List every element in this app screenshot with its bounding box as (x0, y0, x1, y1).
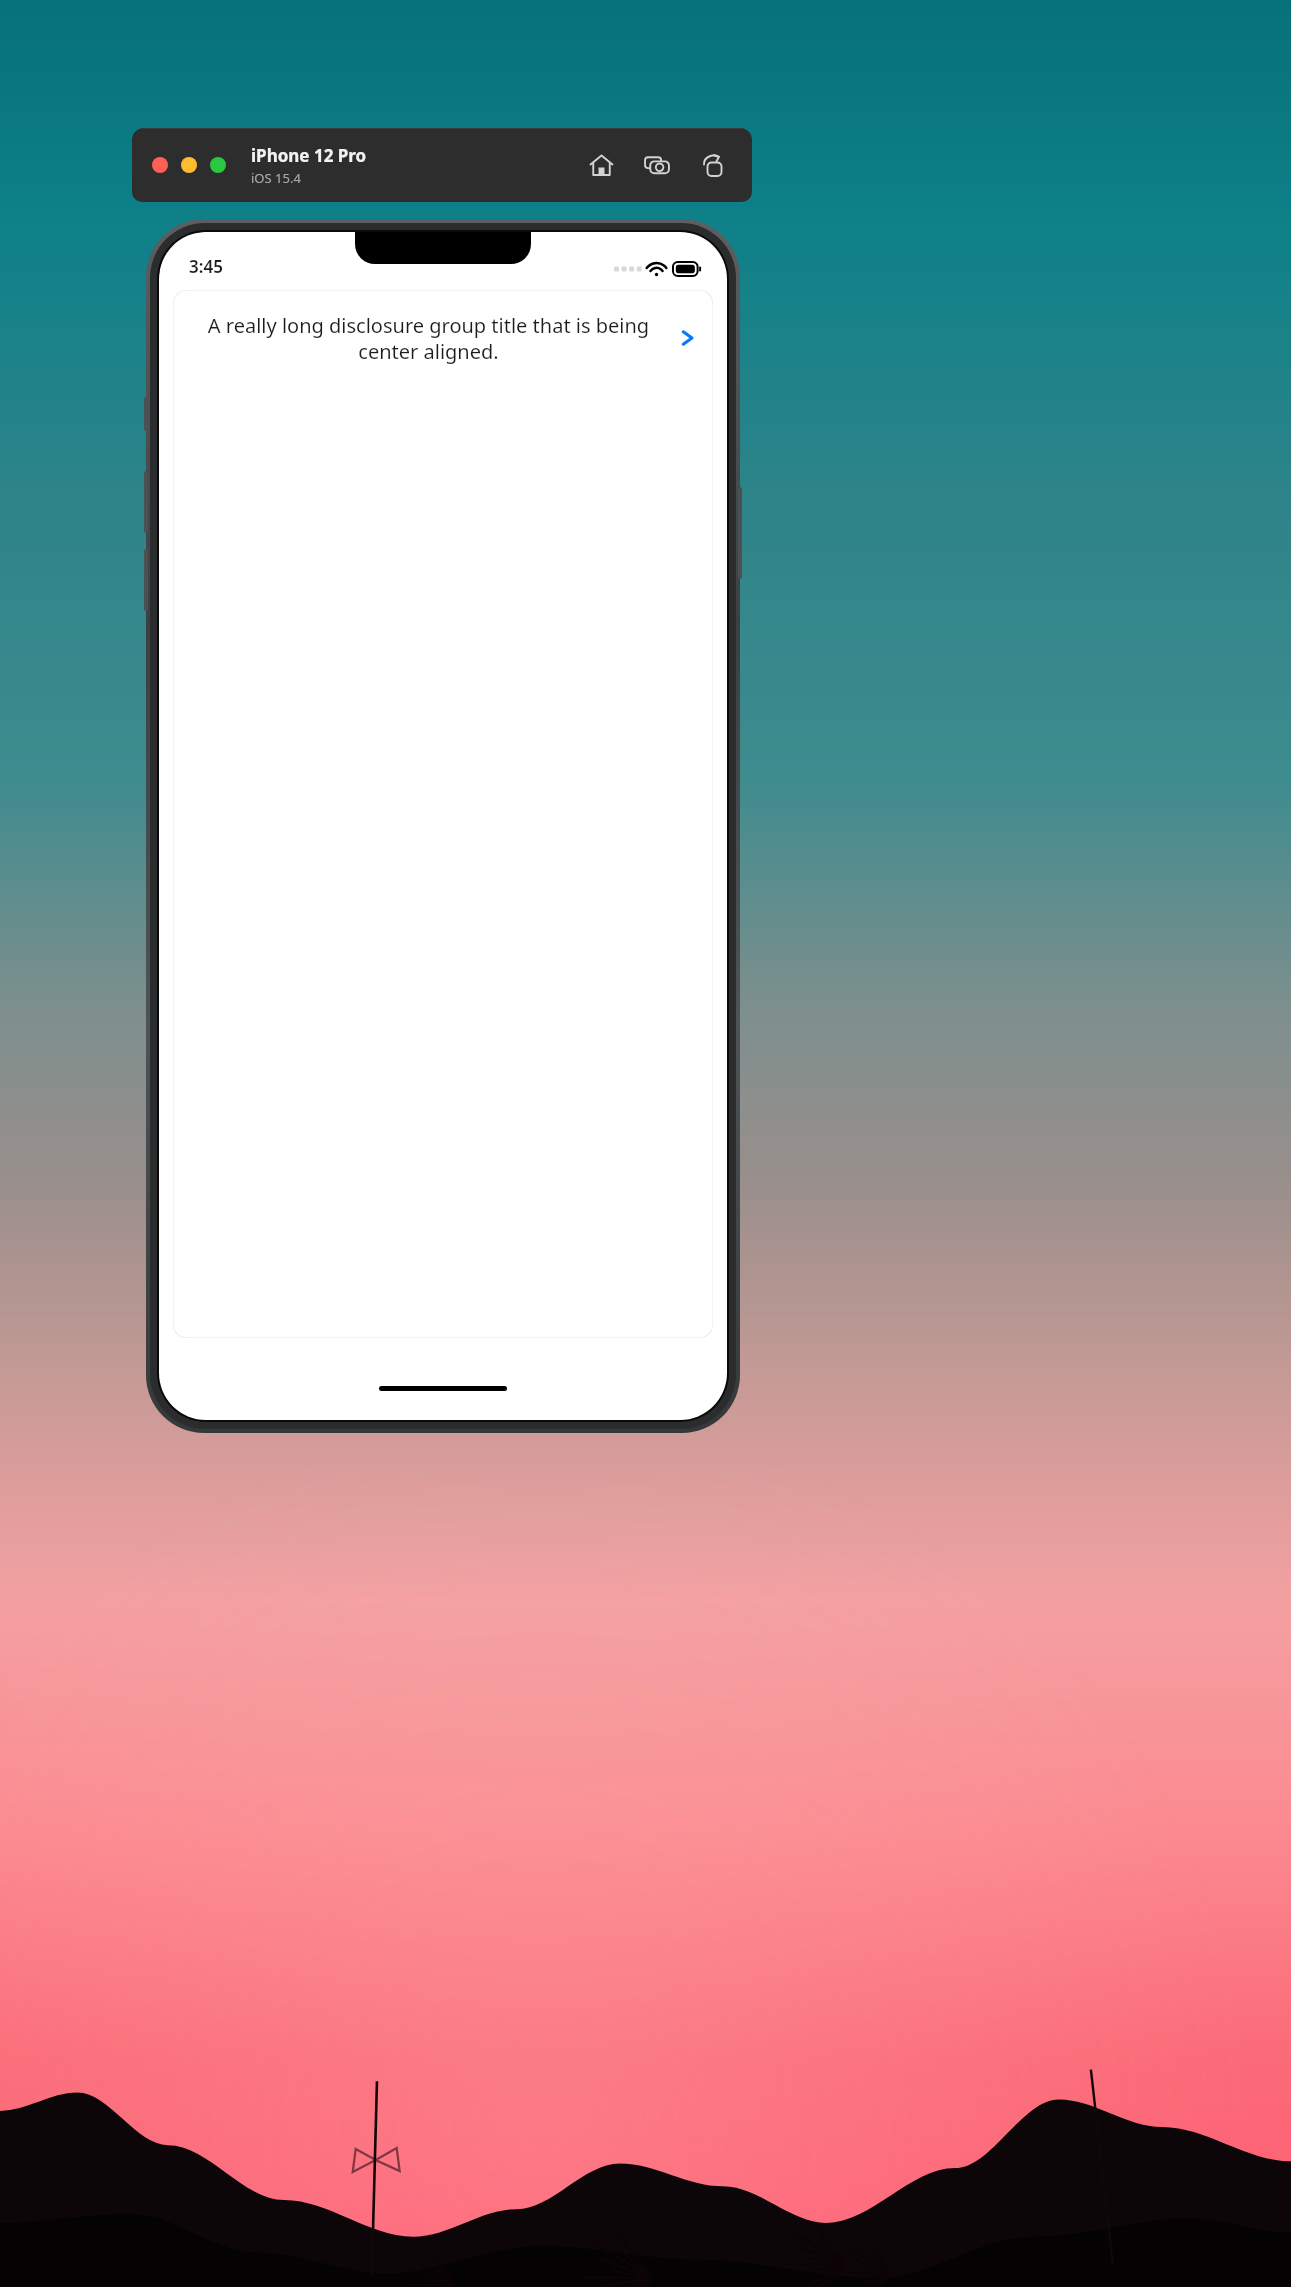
button[interactable]: A really long disclosure group title tha… (173, 290, 713, 386)
button[interactable]: Minimise (181, 157, 197, 173)
staticText: 3:45 (189, 255, 223, 278)
button[interactable]: Home (584, 148, 618, 182)
staticText: A really long disclosure group title tha… (191, 312, 666, 365)
staticText: iPhone 12 Pro (251, 144, 367, 167)
button[interactable]: Screenshot (640, 148, 674, 182)
button[interactable]: Close (152, 157, 168, 173)
button[interactable]: Zoom (210, 157, 226, 173)
staticText: iOS 15.4 (251, 169, 301, 187)
button[interactable]: Rotate (696, 148, 730, 182)
